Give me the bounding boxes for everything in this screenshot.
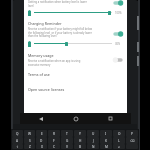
button[interactable]: V (61, 144, 73, 149)
button[interactable]: C (48, 144, 60, 149)
button[interactable]: 30% (24, 39, 127, 48)
staticText: level (28, 4, 34, 8)
staticText: Receive a notification when an app is us… (28, 59, 100, 66)
staticText: I (105, 132, 107, 136)
button[interactable]: Back (36, 114, 45, 123)
staticText: ⌫ (130, 139, 135, 143)
button[interactable]: X (36, 144, 47, 149)
staticText: Open source licenses (28, 87, 65, 92)
staticText: N (92, 145, 95, 149)
staticText: F (53, 139, 55, 143)
staticText: G (66, 139, 69, 143)
button[interactable]: ⌫ (126, 137, 138, 144)
button[interactable]: S (24, 137, 35, 144)
staticText: V (66, 145, 68, 149)
button[interactable]: A (12, 137, 23, 144)
staticText: ↵ (118, 145, 121, 149)
staticText: O (118, 132, 121, 136)
button[interactable]: 100% (24, 8, 127, 17)
button[interactable]: Recent apps (106, 114, 115, 123)
staticText: P (131, 132, 133, 136)
staticText: E (41, 132, 43, 136)
button[interactable]: Toggle off (112, 56, 124, 64)
button[interactable]: Toggle on (112, 30, 124, 38)
button[interactable]: M (100, 144, 112, 149)
button[interactable]: Home (71, 114, 80, 123)
button[interactable]: Getting a notification when battery leve… (24, 0, 127, 18)
staticText: 30% (115, 42, 121, 46)
button[interactable]: F (48, 137, 60, 144)
button[interactable]: Y (74, 130, 86, 137)
button[interactable]: K (100, 137, 112, 144)
button[interactable]: Z (24, 144, 35, 149)
staticText: M (105, 145, 108, 149)
button[interactable]: Open source licenses (24, 82, 127, 97)
staticText: T (66, 132, 68, 136)
button[interactable]: Terms of use (24, 67, 127, 82)
staticText: 100% (115, 11, 122, 15)
staticText: R (53, 132, 56, 136)
button[interactable]: ↵ (113, 144, 125, 149)
button[interactable]: Charging Reminder (24, 18, 127, 49)
button[interactable]: B (74, 144, 86, 149)
staticText: Getting a notification when battery leve… (28, 0, 106, 4)
staticText: Z (29, 145, 31, 149)
staticText: B (79, 145, 82, 149)
button[interactable]: U (87, 130, 99, 137)
button[interactable]: Q (12, 130, 23, 137)
staticText: Charging Reminder (28, 21, 62, 26)
button[interactable]: I (100, 130, 112, 137)
staticText: Terms of use (28, 72, 50, 77)
button[interactable]: E (36, 130, 47, 137)
button[interactable]: G (61, 137, 73, 144)
staticText: J (93, 139, 94, 143)
staticText: S (29, 139, 31, 143)
button[interactable]: H (74, 137, 86, 144)
button[interactable]: Memory usage (24, 49, 127, 67)
staticText: Y (79, 132, 81, 136)
staticText: D (40, 139, 43, 143)
staticText: Q (16, 132, 19, 136)
staticText: X (41, 145, 43, 149)
button[interactable]: J (87, 137, 99, 144)
button[interactable]: O (113, 130, 125, 137)
staticText: Memory usage (28, 53, 54, 58)
staticText: W (28, 132, 31, 136)
button[interactable]: D (36, 137, 47, 144)
button[interactable]: R (48, 130, 60, 137)
button[interactable]: T (61, 130, 73, 137)
button[interactable]: Toggle on (112, 0, 124, 7)
button[interactable]: ⇧ (12, 144, 23, 149)
button[interactable]: P (126, 130, 138, 137)
staticText: U (92, 132, 95, 136)
button[interactable]: L (113, 137, 125, 144)
button[interactable]: W (24, 130, 35, 137)
staticText: C (53, 145, 56, 149)
staticText: K (105, 139, 108, 143)
staticText: A (16, 139, 19, 143)
staticText: Receive a notification if your battery m… (28, 27, 106, 37)
staticText: ⇧ (16, 145, 19, 149)
staticText: H (79, 139, 82, 143)
staticText: L (118, 139, 120, 143)
button[interactable]: N (87, 144, 99, 149)
